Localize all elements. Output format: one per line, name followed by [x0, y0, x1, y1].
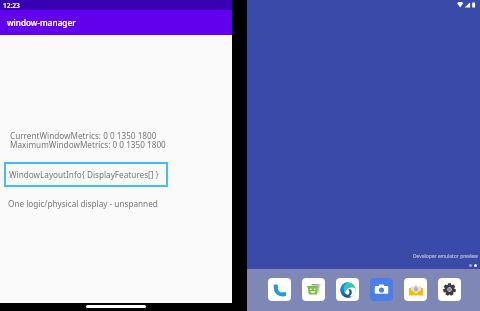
staticText: One logic/physical display - unspanned [8, 198, 158, 209]
button[interactable]: Messages [302, 278, 325, 301]
button[interactable]: Phone [268, 278, 291, 301]
button[interactable]: Camera [370, 278, 393, 301]
button[interactable]: Settings [438, 278, 461, 301]
staticText: Developer emulator preview [413, 253, 478, 260]
button[interactable]: WindowLayoutInfo{ DisplayFeatures[] } [4, 162, 168, 187]
staticText: MaximumWindowMetrics: 0 0 1350 1800 [10, 139, 166, 150]
staticText: window-manager [7, 17, 76, 28]
button[interactable]: Email [404, 278, 427, 301]
staticText: 12:23 [3, 1, 20, 10]
staticText: WindowLayoutInfo{ DisplayFeatures[] } [9, 169, 159, 180]
button[interactable]: Browser [336, 278, 359, 301]
staticText: CurrentWindowMetrics: 0 0 1350 1800 [10, 130, 157, 141]
